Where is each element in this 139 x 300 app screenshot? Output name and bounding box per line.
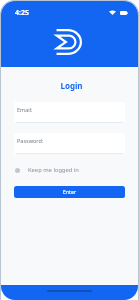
- button[interactable]: Email:: [14, 102, 125, 123]
- staticText: Keep me logged in: [28, 166, 79, 174]
- staticText: Login: [16, 80, 127, 91]
- staticText: 4:25: [15, 8, 29, 18]
- button[interactable]: Keep me logged in: [14, 165, 125, 175]
- button[interactable]: Enter: [14, 186, 125, 198]
- staticText: Email:: [17, 106, 33, 113]
- button[interactable]: Password:: [14, 133, 125, 154]
- staticText: Password:: [17, 137, 44, 144]
- staticText: Enter: [63, 188, 77, 195]
